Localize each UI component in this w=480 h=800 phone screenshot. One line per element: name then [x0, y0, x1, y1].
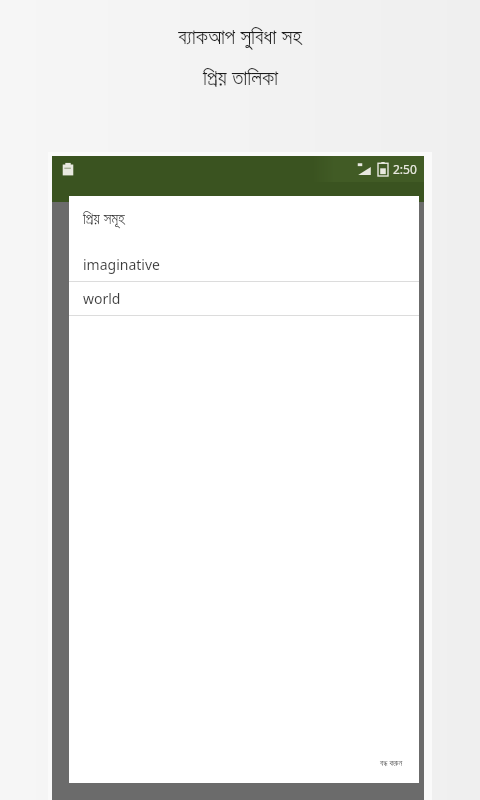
- staticText: 2:50: [393, 161, 417, 177]
- button[interactable]: বন্ধ করুন: [374, 753, 409, 772]
- staticText: ব্যাকআপ সুবিধা সহ: [178, 22, 302, 51]
- staticText: বন্ধ করুন: [380, 757, 403, 768]
- staticText: world: [83, 289, 121, 308]
- other: Notification: [60, 161, 76, 177]
- staticText: প্রিয় তালিকা: [203, 63, 278, 92]
- staticText: imaginative: [83, 255, 160, 274]
- button[interactable]: world: [69, 282, 419, 315]
- staticText: প্রিয় সমূহ: [83, 208, 125, 228]
- button[interactable]: imaginative: [69, 248, 419, 281]
